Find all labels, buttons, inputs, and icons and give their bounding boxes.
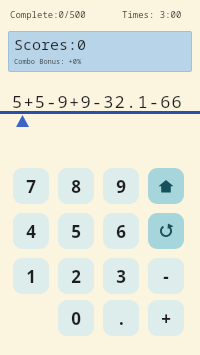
button[interactable]: -	[148, 258, 184, 294]
button[interactable]: Home	[148, 168, 184, 204]
button[interactable]: 6	[103, 213, 139, 249]
staticText: 7	[26, 175, 36, 198]
button[interactable]: 0	[58, 300, 94, 336]
staticText: .	[119, 307, 124, 330]
button[interactable]: +	[148, 300, 184, 336]
button[interactable]: 9	[103, 168, 139, 204]
staticText: 6	[116, 220, 126, 243]
staticText: Times: 3:00	[122, 8, 182, 20]
button[interactable]: 8	[58, 168, 94, 204]
staticText: -	[163, 265, 169, 288]
button[interactable]: 5	[58, 213, 94, 249]
staticText: 4	[26, 220, 36, 243]
staticText: +	[161, 307, 171, 330]
staticText: 0	[71, 307, 81, 330]
staticText: Complete:0/500	[10, 8, 86, 20]
staticText: Combo Bonus: +0%	[14, 57, 82, 67]
staticText: 5+5-9+9-32.1-66	[12, 90, 183, 112]
button[interactable]: 7	[13, 168, 49, 204]
staticText: 1	[26, 265, 36, 288]
staticText: 8	[71, 175, 81, 198]
button[interactable]: Restart	[148, 213, 184, 249]
staticText: 5	[71, 220, 81, 243]
button[interactable]: 4	[13, 213, 49, 249]
button[interactable]: 2	[58, 258, 94, 294]
staticText: Scores:0	[14, 34, 87, 54]
button[interactable]: .	[103, 300, 139, 336]
staticText: 3	[116, 265, 126, 288]
staticText: 2	[71, 265, 81, 288]
button[interactable]: 1	[13, 258, 49, 294]
button[interactable]: 3	[103, 258, 139, 294]
staticText: 9	[116, 175, 126, 198]
